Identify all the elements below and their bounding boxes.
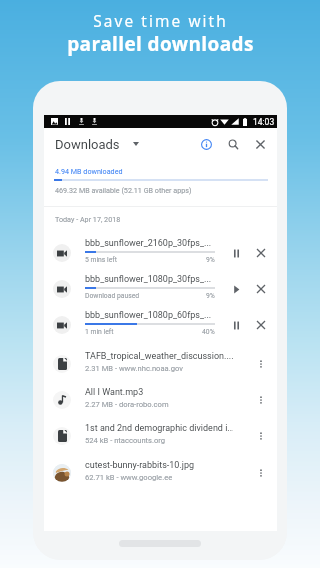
button[interactable]: bbb_sunflower_1080p_60fps_...	[44, 307, 277, 343]
staticText: 1 min left	[85, 328, 114, 336]
button[interactable]: Pause download	[226, 243, 246, 263]
button[interactable]: Search	[223, 134, 243, 154]
staticText: Download paused	[85, 292, 140, 300]
button[interactable]: Resume download	[226, 279, 246, 299]
button[interactable]: Cancel download	[251, 243, 271, 263]
staticText: All I Want.mp3	[85, 387, 144, 398]
button[interactable]: Cancel download	[251, 279, 271, 299]
staticText: 14:03	[253, 117, 275, 127]
button[interactable]: More options	[251, 390, 271, 410]
button[interactable]: Download info	[196, 134, 216, 154]
staticText: 5 mins left	[85, 256, 117, 264]
button[interactable]: Close	[250, 134, 270, 154]
staticText: bbb_sunflower_2160p_30fps_...	[85, 238, 211, 249]
staticText: bbb_sunflower_1080p_30fps_...	[85, 274, 211, 285]
staticText: bbb_sunflower_1080p_60fps_...	[85, 310, 211, 321]
staticText: Save time with	[93, 10, 228, 31]
button[interactable]: Downloads	[55, 128, 139, 160]
staticText: 4.94 MB downloaded	[55, 167, 123, 175]
button[interactable]: bbb_sunflower_2160p_30fps_...	[44, 235, 277, 271]
button[interactable]: All I Want.mp3	[44, 382, 277, 418]
button[interactable]: Cancel download	[251, 315, 271, 335]
staticText: Today - Apr 17, 2018	[55, 215, 121, 223]
button[interactable]: cutest-bunny-rabbits-10.jpg	[44, 455, 277, 491]
staticText: Downloads	[55, 137, 120, 152]
staticText: TAFB_tropical_weather_discussion....	[85, 351, 233, 362]
staticText: 2.27 MB - dora-robo.com	[85, 400, 169, 409]
button[interactable]: Pause download	[226, 315, 246, 335]
staticText: 62.71 kB - www.google.ee	[85, 473, 173, 482]
staticText: 1st and 2nd demographic dividend i...	[85, 423, 233, 434]
button[interactable]: 1st and 2nd demographic dividend i...	[44, 418, 277, 454]
staticText: parallel downloads	[67, 31, 254, 57]
staticText: 524 kB - ntaccounts.org	[85, 436, 166, 445]
button[interactable]: More options	[251, 426, 271, 446]
button[interactable]: More options	[251, 354, 271, 374]
staticText: 2.31 MB - www.nhc.noaa.gov	[85, 364, 183, 373]
button[interactable]: TAFB_tropical_weather_discussion....	[44, 346, 277, 382]
staticText: cutest-bunny-rabbits-10.jpg	[85, 460, 195, 471]
staticText: 469.32 MB available (52.11 GB other apps…	[55, 186, 192, 194]
staticText: 40%	[202, 328, 215, 336]
staticText: 9%	[206, 292, 215, 300]
button[interactable]: bbb_sunflower_1080p_30fps_...	[44, 271, 277, 307]
button[interactable]: More options	[251, 463, 271, 483]
staticText: 9%	[206, 256, 215, 264]
